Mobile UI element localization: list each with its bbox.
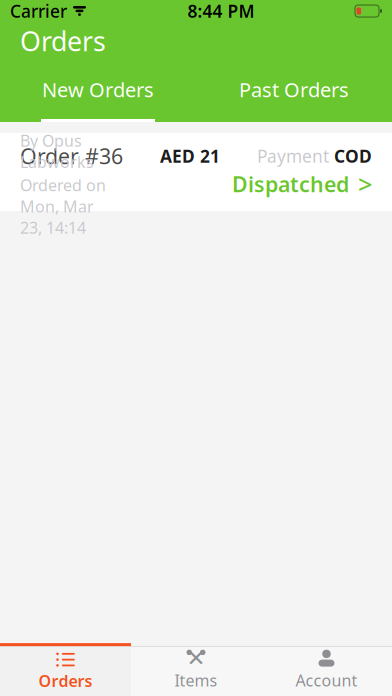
staticText: Dispatched [232, 170, 349, 198]
staticText: AED 21 [160, 144, 220, 167]
staticText: Items [174, 670, 217, 691]
button[interactable]: New Orders [0, 60, 196, 122]
staticText: Orders [20, 23, 106, 59]
staticText: Order #36 [20, 142, 123, 170]
button[interactable]: Account [261, 647, 392, 696]
staticText: Payment [257, 144, 329, 167]
staticText: > [358, 167, 372, 201]
staticText: COD [329, 144, 372, 167]
staticText: Orders [38, 670, 92, 691]
staticText: Carrier [10, 0, 67, 22]
staticText: 8:44 PM [187, 0, 254, 22]
staticText: New Orders [42, 76, 154, 103]
staticText: ✕ [186, 645, 205, 671]
button[interactable]: Past Orders [196, 60, 392, 122]
staticText: Ordered on Mon, Mar 23, 14:14 [20, 174, 106, 238]
button[interactable]: Order #36 [0, 133, 392, 211]
staticText: Account [295, 670, 357, 691]
button[interactable]: ✕ [131, 647, 261, 696]
staticText: Past Orders [239, 76, 349, 103]
staticText: By Opus Labworks [20, 130, 94, 172]
button[interactable]: Orders [0, 647, 131, 696]
